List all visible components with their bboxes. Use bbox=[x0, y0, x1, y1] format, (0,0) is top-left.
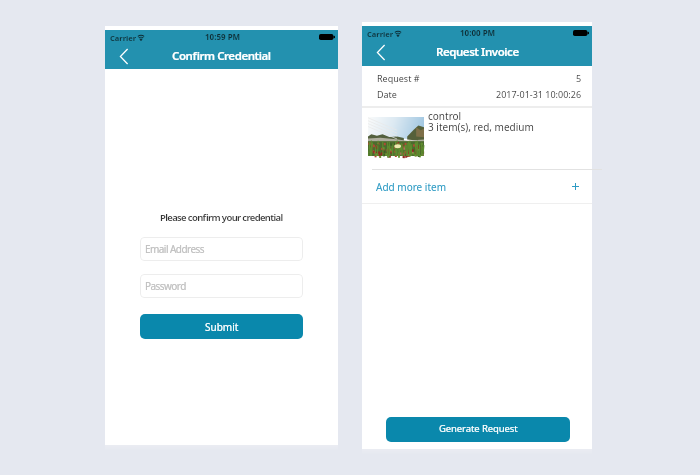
staticText: 10:59 PM bbox=[205, 31, 241, 42]
staticText: Request Invoice bbox=[436, 44, 519, 60]
staticText: Please confirm your credential bbox=[160, 211, 283, 224]
staticText: 3 item(s), red, medium bbox=[428, 120, 534, 134]
button[interactable]: Password bbox=[140, 274, 303, 298]
button[interactable]: Back bbox=[373, 43, 395, 65]
staticText: control bbox=[428, 109, 462, 123]
staticText: Carrier bbox=[367, 29, 394, 39]
staticText: 5 bbox=[576, 72, 582, 84]
staticText: Confirm Credential bbox=[172, 48, 271, 64]
button[interactable]: Add more item bbox=[362, 170, 592, 203]
staticText: Date bbox=[377, 88, 397, 100]
button[interactable]: Generate Request bbox=[386, 417, 570, 442]
staticText: Add more item bbox=[376, 180, 447, 194]
staticText: 2017-01-31 10:00:26 bbox=[496, 88, 582, 100]
staticText: Password bbox=[145, 279, 186, 293]
staticText: Generate Request bbox=[439, 422, 518, 435]
button[interactable]: Back bbox=[116, 47, 138, 69]
button[interactable]: control bbox=[362, 108, 592, 168]
staticText: Submit bbox=[205, 320, 239, 334]
staticText: Request # bbox=[377, 72, 420, 84]
button[interactable]: Submit bbox=[140, 314, 303, 339]
staticText: Carrier bbox=[110, 33, 137, 43]
staticText: 10:00 PM bbox=[460, 27, 496, 38]
button[interactable]: Email Address bbox=[140, 237, 303, 261]
staticText: Email Address bbox=[145, 242, 204, 256]
